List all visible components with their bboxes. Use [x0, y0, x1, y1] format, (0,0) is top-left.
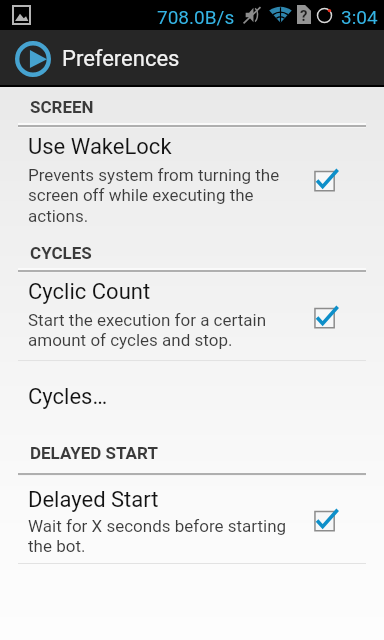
staticText: 3:04 [341, 6, 378, 28]
button[interactable] [0, 271, 384, 360]
staticText: Use WakeLock [28, 134, 172, 160]
other: App icon [15, 41, 51, 77]
staticText: Cyclic Count [28, 279, 151, 305]
staticText: Prevents system from turning the screen … [28, 165, 280, 227]
staticText: ? [300, 7, 308, 25]
other: Screenshot [12, 5, 31, 25]
other: SIM unknown [297, 5, 311, 24]
staticText: SCREEN [30, 97, 94, 117]
button[interactable]: App icon [0, 30, 384, 87]
staticText: Start the execution for a certain amount… [28, 310, 267, 351]
button[interactable] [0, 475, 384, 563]
staticText: DELAYED START [30, 443, 158, 463]
button[interactable]: Toggle Delayed Start [309, 504, 343, 538]
other: Wi-Fi [269, 6, 292, 23]
staticText: 708.0B/s [157, 6, 235, 28]
staticText: Cycles… [28, 384, 108, 410]
button[interactable]: Toggle Cyclic Count [309, 301, 343, 335]
staticText: Delayed Start [28, 487, 159, 513]
staticText: Preferences [62, 46, 180, 72]
staticText: CYCLES [30, 243, 92, 263]
button[interactable] [0, 362, 384, 420]
staticText: Wait for X seconds before starting the b… [28, 516, 287, 557]
button[interactable]: Toggle Use WakeLock [309, 164, 343, 198]
button[interactable] [0, 126, 384, 232]
other: Silent mode [243, 6, 262, 24]
